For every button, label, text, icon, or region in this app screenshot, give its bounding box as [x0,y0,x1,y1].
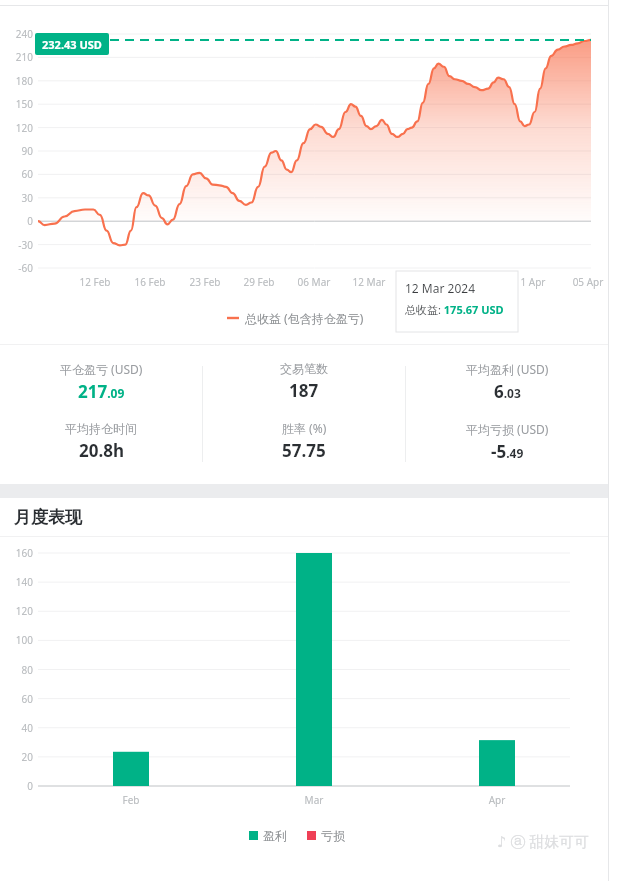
staticText: 12 Mar 2024 [405,280,475,296]
staticText: 20 [0,750,33,764]
staticText: 12 Mar [339,275,399,289]
staticText: 30 [0,191,33,205]
staticText: 0 [0,779,33,793]
staticText: 187 [289,379,319,402]
staticText: 总收益: 175.67 USD [405,302,504,317]
staticText: 平均亏损 (USD) [466,421,549,437]
staticText: 12 Feb [65,275,125,289]
staticText: 总收益 (包含持仓盈亏) [245,310,364,326]
staticText: 1 Apr [503,275,563,289]
button[interactable]: 交易笔数 [203,344,405,484]
staticText: 210 [0,50,33,64]
staticText: Feb [101,793,161,807]
staticText: 0 [0,214,33,228]
staticText: Mar [284,793,344,807]
staticText: ♪ ⓐ 甜妹可可 [497,831,590,851]
staticText: 平均持仓时间 [65,421,137,436]
staticText: 交易笔数 [280,361,328,376]
staticText: 20.8h [79,439,124,462]
button[interactable]: 总收益 (包含持仓盈亏) [227,310,364,326]
staticText: 亏损 [321,828,345,843]
staticText: -5.49 [491,440,524,463]
button[interactable]: 盈利 [249,828,345,843]
staticText: 40 [0,721,33,735]
staticText: 60 [0,167,33,181]
staticText: 29 Feb [229,275,289,289]
staticText: 232.43 USD [42,37,102,52]
staticText: 23 Feb [175,275,235,289]
staticText: 平均盈利 (USD) [466,361,549,377]
staticText: 100 [0,633,33,647]
staticText: 胜率 (%) [282,420,327,436]
staticText: 140 [0,575,33,589]
staticText: 180 [0,74,33,88]
staticText: 平仓盈亏 (USD) [60,361,143,377]
staticText: 120 [0,604,33,618]
staticText: 57.75 [282,439,326,462]
button[interactable]: 平仓盈亏 (USD) [0,344,202,484]
staticText: 16 Feb [120,275,180,289]
button[interactable]: 平均盈利 (USD) [406,344,608,484]
staticText: 120 [0,121,33,135]
staticText: 217.09 [78,380,125,403]
staticText: 盈利 [263,828,287,843]
staticText: -30 [0,238,33,252]
staticText: 月度表现 [14,507,82,528]
staticText: 6.03 [494,380,521,403]
staticText: 06 Mar [284,275,344,289]
staticText: 90 [0,144,33,158]
staticText: 160 [0,546,33,560]
staticText: 150 [0,97,33,111]
staticText: Apr [467,793,527,807]
staticText: 60 [0,692,33,706]
staticText: 80 [0,663,33,677]
button[interactable]: 232.43 USD [35,33,109,55]
staticText: 05 Apr [558,275,618,289]
staticText: -60 [0,261,33,275]
staticText: 240 [0,27,33,41]
